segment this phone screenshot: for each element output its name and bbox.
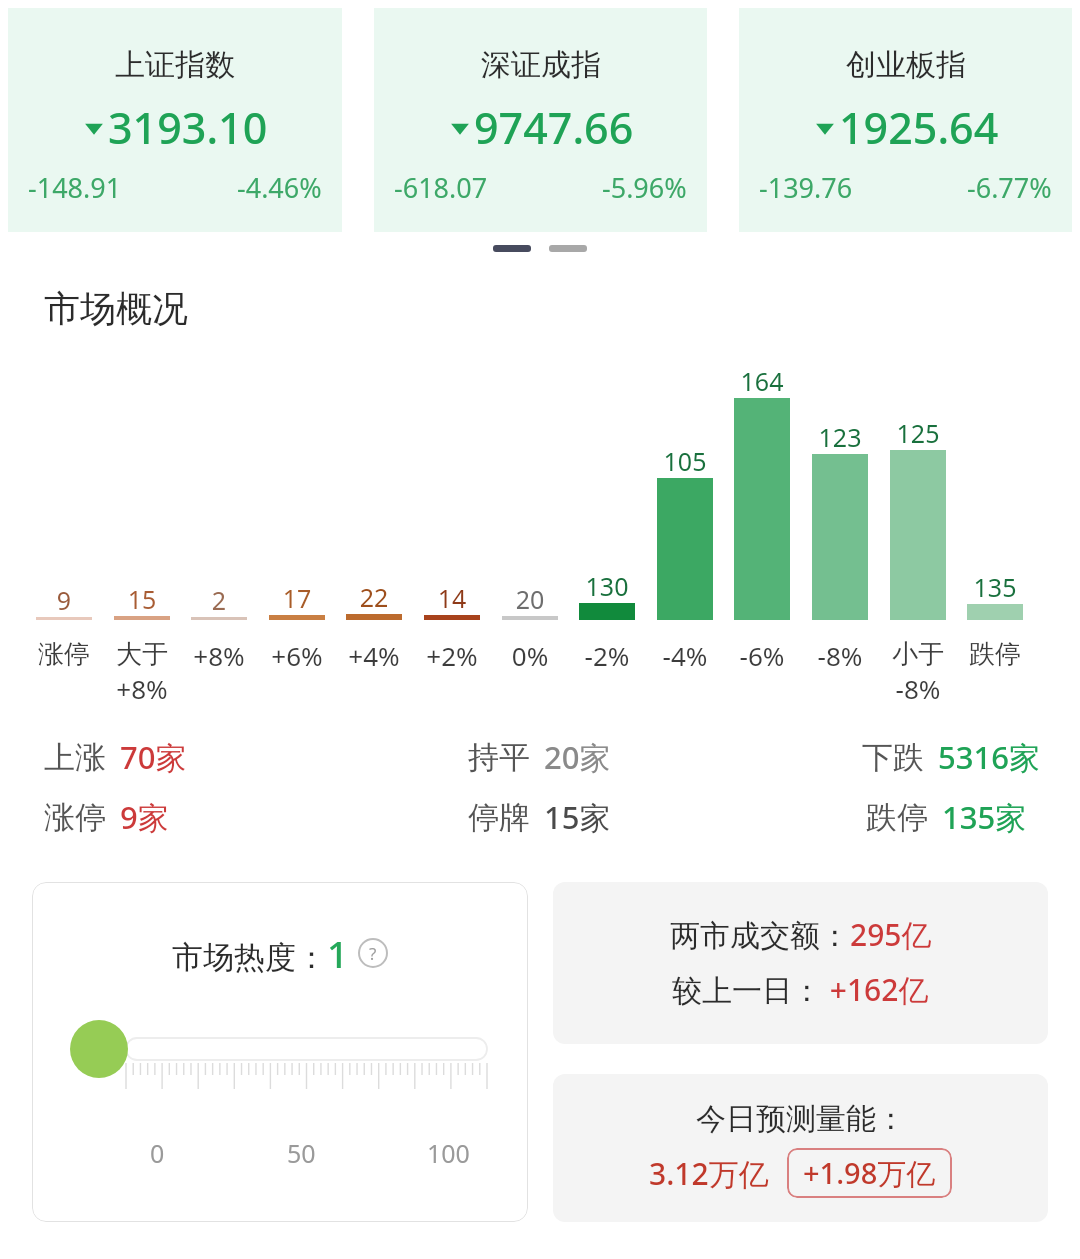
button[interactable]: 上证指数 xyxy=(8,8,342,232)
staticText: 20 xyxy=(502,582,558,616)
staticText: ? xyxy=(369,942,377,965)
staticText: 小于 xyxy=(890,638,946,671)
staticText: 1644 xyxy=(734,364,790,432)
staticText: -5.96% xyxy=(602,169,687,206)
button[interactable]: +1.98万亿 xyxy=(787,1148,952,1198)
button[interactable]: 2 xyxy=(191,350,247,695)
staticText: 135 xyxy=(967,570,1023,604)
button[interactable]: 15 xyxy=(114,350,170,695)
staticText: 跌停 xyxy=(967,638,1023,671)
staticText: +8% xyxy=(114,671,170,706)
staticText: 大于 xyxy=(114,638,170,671)
button[interactable]: 跌停 xyxy=(866,796,1027,838)
staticText: -139.76 xyxy=(759,169,853,206)
staticText: 130 xyxy=(579,569,635,603)
button[interactable]: 20 xyxy=(502,350,558,695)
button[interactable]: 14 xyxy=(424,350,480,695)
staticText: 0 xyxy=(150,1136,165,1170)
staticText: 9747.66 xyxy=(474,98,634,157)
staticText: -2% xyxy=(579,638,635,673)
staticText: +1.98万亿 xyxy=(803,1153,936,1193)
staticText: 持平 xyxy=(468,738,530,777)
staticText: 今日预测量能： xyxy=(696,1100,906,1138)
staticText: 3.12万亿 xyxy=(649,1153,769,1194)
staticText: 5316家 xyxy=(938,736,1040,778)
staticText: -4.46% xyxy=(237,169,322,206)
staticText: 涨停 xyxy=(36,638,92,671)
staticText: -148.91 xyxy=(28,169,122,206)
button[interactable]: 今日预测量能： xyxy=(553,1074,1048,1222)
staticText: -8% xyxy=(812,638,868,673)
staticText: 创业板指 xyxy=(846,46,966,84)
staticText: 停牌 xyxy=(468,798,530,837)
staticText: +4% xyxy=(346,638,402,673)
staticText: 1250 xyxy=(890,416,946,484)
button[interactable]: 1250 xyxy=(890,350,946,695)
staticText: 17 xyxy=(269,581,325,615)
staticText: 市场概况 xyxy=(44,286,188,331)
button[interactable]: 上涨 xyxy=(44,736,187,778)
staticText: 较上一日： +162亿 xyxy=(672,969,929,1010)
staticText: 2 xyxy=(191,583,247,617)
staticText: 两市成交额：295亿 xyxy=(670,914,932,955)
staticText: +8% xyxy=(191,638,247,673)
button[interactable]: 1644 xyxy=(734,350,790,695)
button[interactable]: 1234 xyxy=(812,350,868,695)
staticText: 1925.64 xyxy=(839,98,999,157)
button[interactable]: 135 xyxy=(967,350,1023,695)
staticText: -6.77% xyxy=(967,169,1052,206)
staticText: 15 xyxy=(114,582,170,616)
button[interactable]: 市场热度：1 xyxy=(32,882,528,1222)
button[interactable]: 两市成交额：295亿 xyxy=(553,882,1048,1044)
staticText: 14 xyxy=(424,581,480,615)
button[interactable]: 130 xyxy=(579,350,635,695)
button[interactable]: 1058 xyxy=(657,350,713,695)
staticText: 市场热度：1 xyxy=(172,928,349,978)
staticText: 0% xyxy=(502,638,558,673)
staticText: 9 xyxy=(36,583,92,617)
staticText: 上证指数 xyxy=(115,46,235,84)
button[interactable]: 创业板指 xyxy=(739,8,1072,232)
button[interactable]: 深证成指 xyxy=(374,8,707,232)
staticText: 跌停 xyxy=(866,798,928,837)
staticText: -8% xyxy=(890,671,946,706)
button[interactable] xyxy=(549,245,587,252)
staticText: 22 xyxy=(346,580,402,614)
staticText: -618.07 xyxy=(394,169,488,206)
staticText: 135家 xyxy=(942,796,1027,838)
staticText: +6% xyxy=(269,638,325,673)
button[interactable] xyxy=(493,245,531,252)
button[interactable]: 停牌 xyxy=(468,796,611,838)
staticText: 下跌 xyxy=(862,738,924,777)
staticText: 100 xyxy=(427,1136,470,1170)
staticText: 涨停 xyxy=(44,798,106,837)
button[interactable]: 9 xyxy=(36,350,92,695)
staticText: 20家 xyxy=(544,736,611,778)
staticText: 1234 xyxy=(812,420,868,488)
button[interactable]: 下跌 xyxy=(862,736,1040,778)
staticText: 9家 xyxy=(120,796,169,838)
button[interactable]: 17 xyxy=(269,350,325,695)
button[interactable]: 22 xyxy=(346,350,402,695)
staticText: 1058 xyxy=(657,444,713,512)
staticText: 50 xyxy=(287,1136,316,1170)
staticText: 70家 xyxy=(120,736,187,778)
button[interactable]: 市场热度说明 xyxy=(358,938,388,968)
button[interactable]: 涨停 xyxy=(44,796,169,838)
staticText: +2% xyxy=(424,638,480,673)
staticText: 15家 xyxy=(544,796,611,838)
staticText: -6% xyxy=(734,638,790,673)
staticText: 深证成指 xyxy=(481,46,601,84)
staticText: 3193.10 xyxy=(108,98,268,157)
staticText: -4% xyxy=(657,638,713,673)
button[interactable]: 持平 xyxy=(468,736,611,778)
staticText: 上涨 xyxy=(44,738,106,777)
